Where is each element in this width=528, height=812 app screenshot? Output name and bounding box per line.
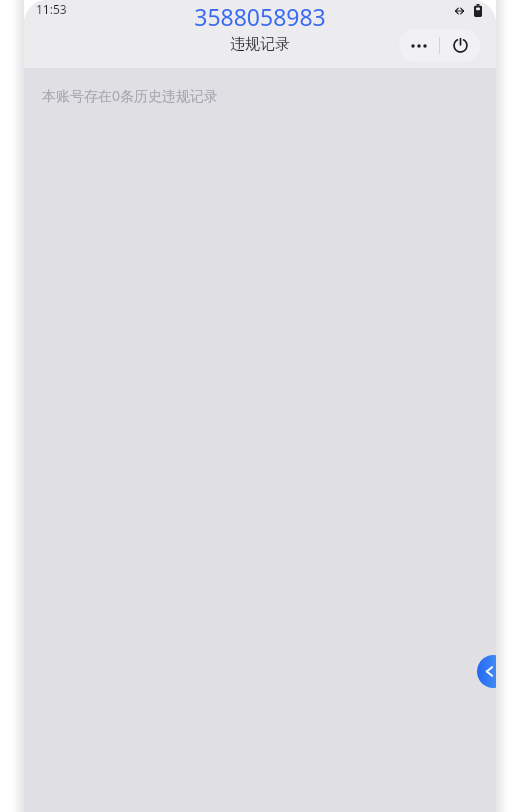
staticText: 本账号存在0条历史违规记录 — [42, 86, 219, 105]
staticText: 违规记录 — [230, 35, 290, 54]
button[interactable]: More options — [399, 29, 480, 62]
button[interactable]: Close — [440, 29, 480, 62]
button[interactable]: Back — [477, 655, 496, 688]
staticText: 3588058983 — [194, 1, 326, 32]
button[interactable]: More options — [399, 29, 439, 62]
staticText: 11:53 — [36, 1, 67, 17]
